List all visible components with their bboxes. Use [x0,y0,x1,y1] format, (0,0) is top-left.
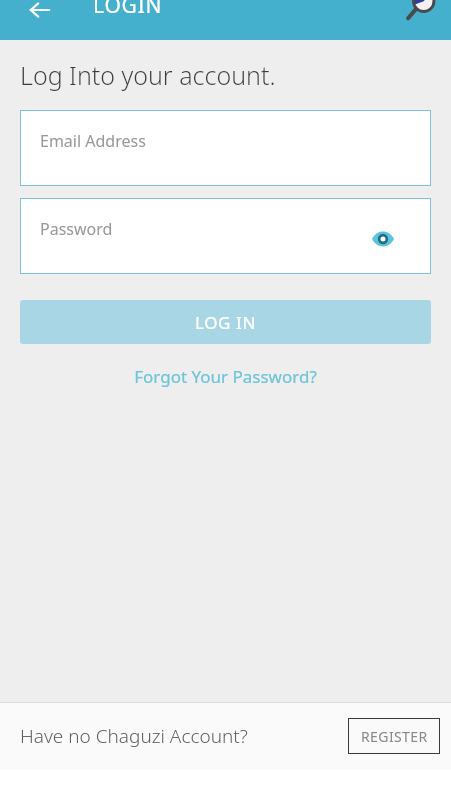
button[interactable]: Forgot Your Password? [126,363,325,390]
staticText: Have no Chaguzi Account? [20,723,248,749]
staticText: Log Into your account. [20,58,276,92]
staticText: Password [40,218,113,240]
button[interactable]: Back [20,0,60,30]
button[interactable]: Show password [365,221,401,257]
staticText: Forgot Your Password? [134,365,317,388]
button[interactable]: LOG IN [20,300,431,344]
button[interactable]: Email Address [20,110,431,186]
button[interactable]: Search [399,0,443,26]
staticText: LOG IN [195,311,256,334]
staticText: LOGIN [93,0,163,20]
staticText: REGISTER [361,727,428,746]
button[interactable]: Password [20,198,431,274]
button[interactable]: REGISTER [348,718,440,754]
staticText: Email Address [40,130,146,152]
